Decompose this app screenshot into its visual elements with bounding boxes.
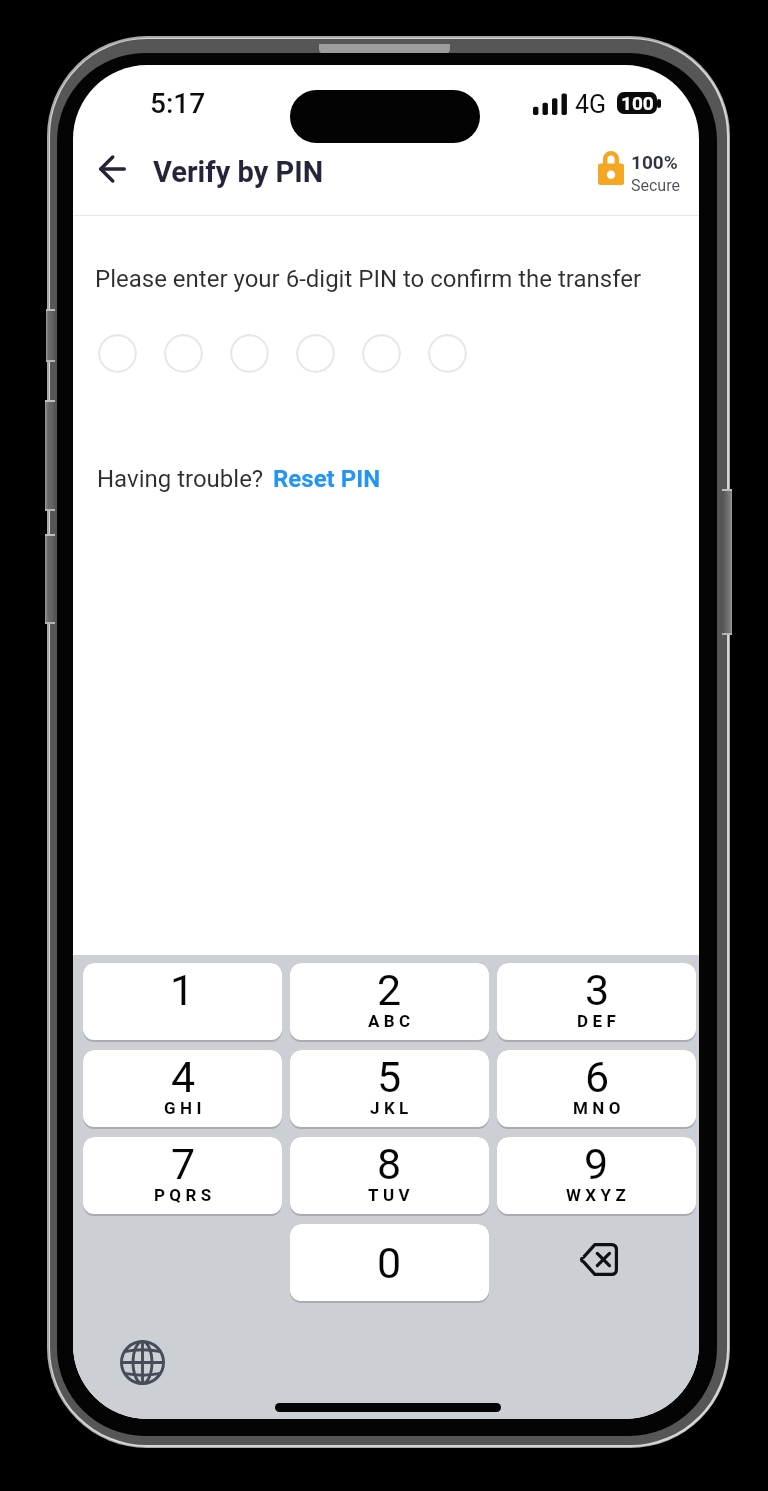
staticText: ABC xyxy=(368,1011,415,1031)
button[interactable]: 3 xyxy=(497,963,696,1040)
button[interactable]: PIN digit 2 xyxy=(164,334,203,373)
staticText: 3 xyxy=(585,965,610,1015)
staticText: Having trouble? xyxy=(97,465,264,493)
button[interactable]: Back xyxy=(90,146,135,192)
button[interactable]: 6 xyxy=(497,1050,696,1127)
staticText: Reset PIN xyxy=(273,465,381,493)
staticText: Secure xyxy=(631,176,680,195)
staticText: 1 xyxy=(170,965,195,1015)
button[interactable]: 7 xyxy=(83,1137,282,1214)
button[interactable]: 2 xyxy=(290,963,489,1040)
button[interactable]: 0 xyxy=(290,1224,489,1301)
button[interactable]: PIN digit 1 xyxy=(98,334,137,373)
staticText: WXYZ xyxy=(566,1185,631,1205)
staticText: 0 xyxy=(377,1238,402,1288)
button[interactable]: Reset PIN xyxy=(273,465,381,493)
staticText: 5:17 xyxy=(150,87,206,120)
button[interactable]: Backspace xyxy=(497,1224,696,1303)
button[interactable]: 9 xyxy=(497,1137,696,1214)
staticText: 100% xyxy=(631,151,678,173)
staticText: 5 xyxy=(377,1052,402,1102)
staticText: Verify by PIN xyxy=(153,155,324,189)
staticText: 100 xyxy=(621,92,654,114)
staticText: GHI xyxy=(164,1098,206,1118)
staticText: 4 xyxy=(171,1052,196,1102)
button[interactable]: PIN digit 5 xyxy=(362,334,401,373)
button[interactable]: Change keyboard language xyxy=(119,1339,165,1385)
staticText: 8 xyxy=(377,1139,402,1189)
staticText: MNO xyxy=(573,1098,625,1118)
staticText: TUV xyxy=(368,1185,415,1205)
staticText: PQRS xyxy=(154,1185,216,1205)
button[interactable]: PIN digit 4 xyxy=(296,334,335,373)
staticText: 6 xyxy=(585,1052,610,1102)
button[interactable]: 4 xyxy=(83,1050,282,1127)
staticText: 7 xyxy=(171,1139,196,1189)
staticText: 4G xyxy=(575,90,607,119)
button[interactable]: PIN digit 6 xyxy=(428,334,467,373)
staticText: JKL xyxy=(370,1098,413,1118)
button[interactable]: Secure connection xyxy=(598,151,682,195)
staticText: Please enter your 6-digit PIN to confirm… xyxy=(95,265,642,293)
button[interactable]: PIN digit 3 xyxy=(230,334,269,373)
staticText: 2 xyxy=(377,965,402,1015)
staticText: 9 xyxy=(584,1139,609,1189)
button[interactable]: 1 xyxy=(83,963,282,1040)
button[interactable]: 8 xyxy=(290,1137,489,1214)
button[interactable]: 5 xyxy=(290,1050,489,1127)
staticText: DEF xyxy=(577,1011,621,1031)
